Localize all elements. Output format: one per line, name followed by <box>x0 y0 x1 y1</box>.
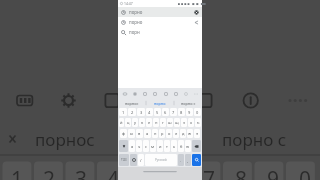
button[interactable]: х <box>188 118 194 127</box>
button[interactable]: р <box>159 129 165 138</box>
button[interactable]: Translate <box>164 92 168 96</box>
staticText: ь <box>173 144 176 149</box>
button[interactable]: и <box>157 140 163 152</box>
button[interactable]: / <box>138 154 144 166</box>
staticText: а <box>146 131 149 136</box>
button[interactable]: 4 <box>146 108 153 116</box>
staticText: л <box>175 131 178 136</box>
staticText: порно с <box>222 128 287 151</box>
button[interactable]: к <box>139 118 145 127</box>
button[interactable]: Stickers <box>143 92 147 96</box>
button[interactable]: с <box>143 140 149 152</box>
button[interactable]: порнос <box>118 99 146 107</box>
button[interactable]: й <box>119 118 124 127</box>
staticText: порнос <box>125 101 139 106</box>
button[interactable]: Clipboard <box>153 92 157 96</box>
button[interactable]: 8 <box>178 108 185 116</box>
button[interactable]: а <box>144 129 151 138</box>
button[interactable]: н <box>153 118 159 127</box>
button[interactable]: ц <box>125 118 131 127</box>
button[interactable]: ?123 <box>119 154 129 166</box>
button[interactable]: GIF <box>123 92 127 96</box>
button[interactable]: ш <box>167 118 173 127</box>
button[interactable]: в <box>136 129 143 138</box>
button[interactable]: э <box>194 129 200 138</box>
button[interactable]: з <box>181 118 187 127</box>
button[interactable]: ю <box>185 140 191 152</box>
button[interactable]: л <box>173 129 179 138</box>
staticText: ж <box>188 131 192 136</box>
button[interactable]: 6 <box>162 108 169 116</box>
button[interactable]: Insert query <box>194 20 199 25</box>
button[interactable]: порн <box>118 27 202 37</box>
button[interactable]: Backspace <box>192 140 201 152</box>
button[interactable]: м <box>150 140 156 152</box>
staticText: б <box>180 144 183 149</box>
button[interactable]: у <box>132 118 138 127</box>
staticText: и <box>159 144 162 149</box>
staticText: ю <box>186 144 190 149</box>
button[interactable]: Comma <box>185 154 191 166</box>
staticText: 3 <box>140 110 143 115</box>
button[interactable]: ф <box>120 129 127 138</box>
button[interactable]: Settings <box>133 92 137 96</box>
button[interactable]: порно <box>146 99 174 107</box>
staticText: 0 <box>196 110 199 115</box>
staticText: порно с <box>181 101 196 106</box>
button[interactable]: порно <box>118 7 202 17</box>
button[interactable]: щ <box>174 118 180 127</box>
button[interactable]: 5 <box>154 108 161 116</box>
staticText: ч <box>138 144 141 149</box>
staticText: 6 <box>164 110 167 115</box>
button[interactable]: Search <box>192 154 201 166</box>
button[interactable]: 0 <box>194 108 201 116</box>
button[interactable]: порно с <box>174 99 202 107</box>
staticText: в <box>138 131 141 136</box>
staticText: 2 <box>43 165 56 180</box>
button[interactable]: Info <box>184 92 188 96</box>
button[interactable]: б <box>178 140 184 152</box>
staticText: 9 <box>267 165 280 180</box>
button[interactable]: т <box>164 140 170 152</box>
button[interactable]: я <box>129 140 135 152</box>
button[interactable]: о <box>166 129 172 138</box>
button[interactable]: Emoji <box>130 154 137 166</box>
staticText: п <box>154 131 157 136</box>
staticText: ф <box>122 131 125 136</box>
staticText: 0 <box>299 165 312 180</box>
button[interactable]: Theme <box>174 92 178 96</box>
button[interactable]: п <box>152 129 158 138</box>
staticText: е <box>148 120 151 125</box>
staticText: ы <box>130 131 134 136</box>
staticText: 5 <box>156 110 159 115</box>
button[interactable]: 2 <box>128 108 136 116</box>
staticText: я <box>131 144 134 149</box>
button[interactable]: порно <box>118 17 202 27</box>
staticText: ц <box>127 120 130 125</box>
button[interactable]: . <box>178 154 184 166</box>
button[interactable]: Русский <box>145 154 177 166</box>
button[interactable]: Shift <box>119 140 128 152</box>
button[interactable]: ч <box>136 140 142 152</box>
button[interactable]: д <box>180 129 186 138</box>
staticText: 1 <box>11 165 24 180</box>
button[interactable]: More <box>194 92 198 96</box>
button[interactable]: ж <box>187 129 193 138</box>
staticText: з <box>183 120 185 125</box>
staticText: 7 <box>203 165 216 180</box>
staticText: н <box>155 120 158 125</box>
button[interactable]: 3 <box>137 108 145 116</box>
button[interactable]: 9 <box>186 108 193 116</box>
button[interactable]: ь <box>171 140 177 152</box>
staticText: порн <box>129 29 140 35</box>
button[interactable]: 7 <box>170 108 177 116</box>
button[interactable]: е <box>146 118 152 127</box>
staticText: 8 <box>180 110 183 115</box>
staticText: щ <box>175 120 179 125</box>
button[interactable]: ъ <box>195 118 201 127</box>
button[interactable]: Clear <box>194 10 199 15</box>
button[interactable]: 1 <box>119 108 127 116</box>
staticText: т <box>166 144 168 149</box>
button[interactable]: ы <box>128 129 135 138</box>
button[interactable]: г <box>160 118 166 127</box>
